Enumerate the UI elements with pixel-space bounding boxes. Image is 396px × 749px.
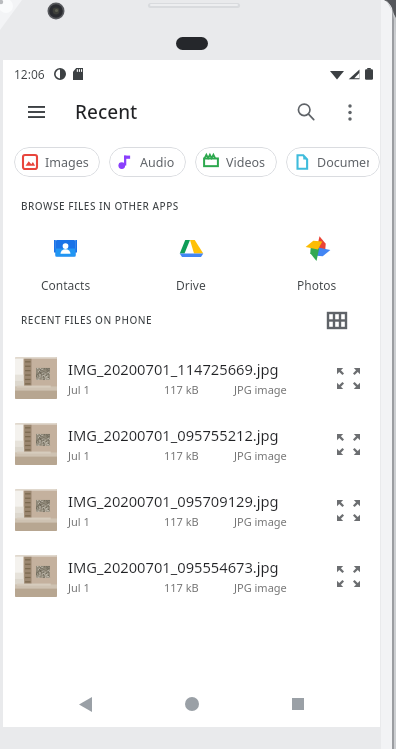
staticText: BROWSE FILES IN OTHER APPS bbox=[21, 199, 179, 213]
staticText: RECENT FILES ON PHONE bbox=[21, 313, 153, 327]
button[interactable]: Images bbox=[14, 147, 100, 177]
staticText: Jul 1 bbox=[68, 448, 164, 463]
button[interactable]: Contacts bbox=[3, 234, 128, 295]
staticText: 117 kB bbox=[164, 382, 234, 397]
button[interactable]: Back bbox=[61, 681, 109, 727]
button[interactable]: IMG_20200701_095755212.jpg bbox=[3, 411, 380, 477]
staticText: 117 kB bbox=[164, 448, 234, 463]
staticText: JPG image bbox=[234, 514, 287, 529]
button[interactable]: Audio bbox=[109, 147, 186, 177]
button[interactable]: Videos bbox=[195, 147, 277, 177]
staticText: Contacts bbox=[41, 277, 91, 293]
button[interactable]: IMG_20200701_095554673.jpg bbox=[3, 543, 380, 609]
button[interactable]: Photos bbox=[254, 234, 380, 295]
staticText: Drive bbox=[176, 277, 206, 293]
staticText: IMG_20200701_095755212.jpg bbox=[68, 425, 279, 445]
staticText: IMG_20200701_095554673.jpg bbox=[68, 557, 279, 577]
button[interactable]: Expand bbox=[330, 426, 366, 462]
button[interactable]: Home bbox=[168, 681, 216, 727]
staticText: IMG_20200701_095709129.jpg bbox=[68, 491, 279, 511]
button[interactable]: Documents bbox=[286, 147, 380, 177]
button[interactable]: Search bbox=[284, 90, 328, 134]
staticText: 117 kB bbox=[164, 514, 234, 529]
button[interactable]: Drive bbox=[128, 234, 254, 295]
staticText: Audio bbox=[140, 154, 175, 171]
staticText: Videos bbox=[226, 154, 266, 171]
staticText: JPG image bbox=[234, 580, 287, 595]
button[interactable]: Expand bbox=[330, 492, 366, 528]
staticText: Images bbox=[45, 154, 89, 171]
staticText: Recent bbox=[75, 99, 138, 125]
staticText: Documents bbox=[317, 154, 369, 171]
staticText: IMG_20200701_114725669.jpg bbox=[68, 359, 279, 379]
staticText: 12:06 bbox=[14, 66, 45, 82]
button[interactable]: IMG_20200701_095709129.jpg bbox=[3, 477, 380, 543]
staticText: Jul 1 bbox=[68, 580, 164, 595]
button[interactable]: Expand bbox=[330, 558, 366, 594]
button[interactable]: Menu bbox=[16, 92, 56, 132]
button[interactable]: Grid view bbox=[320, 303, 354, 337]
button[interactable]: Recents bbox=[274, 681, 322, 727]
staticText: JPG image bbox=[234, 448, 287, 463]
button[interactable]: IMG_20200701_114725669.jpg bbox=[3, 345, 380, 411]
staticText: JPG image bbox=[234, 382, 287, 397]
staticText: Jul 1 bbox=[68, 382, 164, 397]
staticText: Photos bbox=[297, 277, 337, 293]
button[interactable]: More options bbox=[328, 90, 372, 134]
button[interactable]: Expand bbox=[330, 360, 366, 396]
staticText: 117 kB bbox=[164, 580, 234, 595]
staticText: Jul 1 bbox=[68, 514, 164, 529]
